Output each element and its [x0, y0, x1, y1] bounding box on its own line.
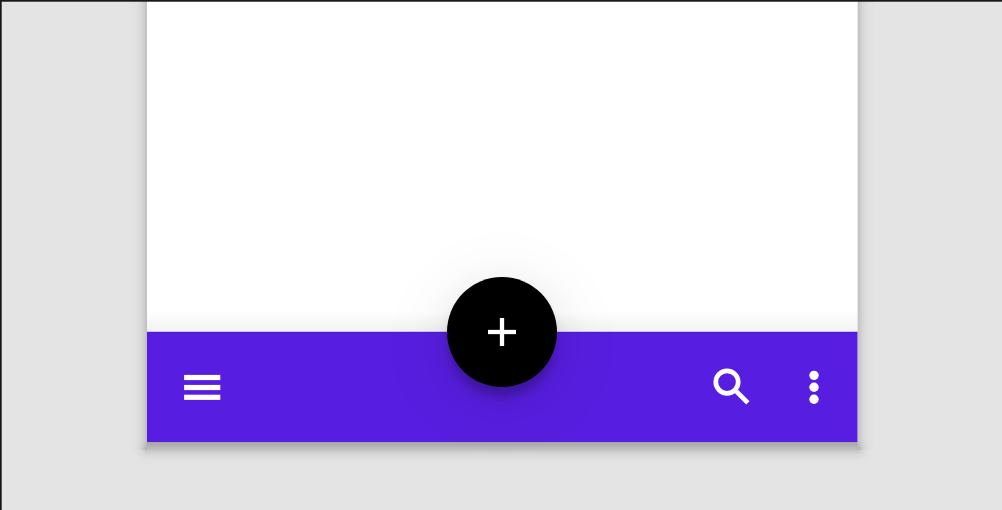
button[interactable]: Add [447, 277, 557, 387]
button[interactable]: More options [780, 353, 848, 421]
button[interactable]: Navigation menu [168, 353, 236, 421]
button[interactable]: Search [693, 353, 761, 421]
